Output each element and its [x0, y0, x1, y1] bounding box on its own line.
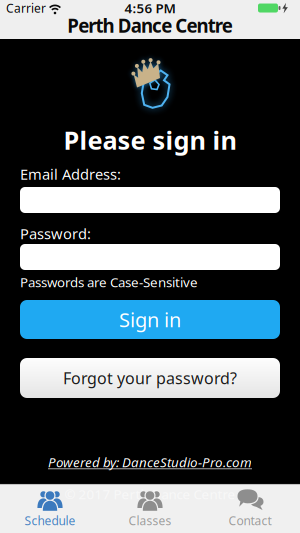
staticText: Schedule [24, 512, 75, 528]
staticText: 4:56 PM [124, 0, 175, 17]
staticText: Forgot your password? [63, 367, 237, 389]
button[interactable]: Classes [100, 484, 200, 533]
staticText: Passwords are Case-Sensitive [20, 273, 198, 291]
button[interactable]: Powered by: DanceStudio-Pro.com [48, 453, 252, 471]
button[interactable]: Forgot your password? [20, 358, 280, 398]
staticText: Sign in [119, 306, 181, 333]
staticText: Contact [228, 512, 271, 528]
staticText: Powered by: DanceStudio-Pro.com [48, 453, 252, 471]
staticText: Password: [20, 224, 91, 243]
button[interactable] [20, 187, 280, 213]
staticText: Please sign in [63, 123, 236, 157]
staticText: Classes [128, 512, 171, 528]
button[interactable]: Sign in [20, 300, 280, 339]
staticText: Email Address: [20, 164, 121, 184]
staticText: Perth Dance Centre [67, 13, 233, 38]
button[interactable]: Contact [200, 484, 300, 533]
button[interactable] [20, 244, 280, 270]
button[interactable]: Schedule [0, 484, 100, 533]
staticText: © 2017 Perth Dance Centre [64, 485, 235, 503]
staticText: Carrier [6, 0, 46, 16]
